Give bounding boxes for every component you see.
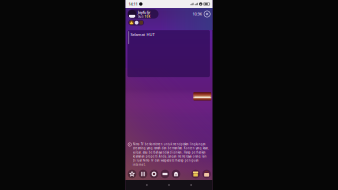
- staticText: Nimo TV berkomitmen untuk menciptakan li…: [133, 142, 209, 166]
- button[interactable]: Lock screen: [172, 170, 180, 178]
- staticText: Joyfuljr: [138, 9, 151, 15]
- button[interactable]: Favourite: [128, 170, 136, 178]
- button[interactable]: Pause: [139, 170, 147, 178]
- staticText: 10K: [145, 15, 151, 18]
- button[interactable]: Joyfuljr: [127, 9, 158, 19]
- button[interactable]: Ranking badges: [128, 20, 144, 25]
- button[interactable]: Close stream: [204, 11, 210, 17]
- staticText: Ikuti: [138, 15, 144, 18]
- staticText: 10.9K: [192, 11, 202, 17]
- button[interactable]: More: [161, 170, 169, 178]
- button[interactable]: Shop: [202, 170, 211, 178]
- button[interactable]: Send gift: [191, 170, 200, 178]
- button[interactable]: Promotion: [193, 92, 211, 100]
- button[interactable]: Share: [150, 170, 158, 178]
- staticText: 14:11: [128, 1, 137, 7]
- staticText: Selamat HUT: [130, 32, 154, 37]
